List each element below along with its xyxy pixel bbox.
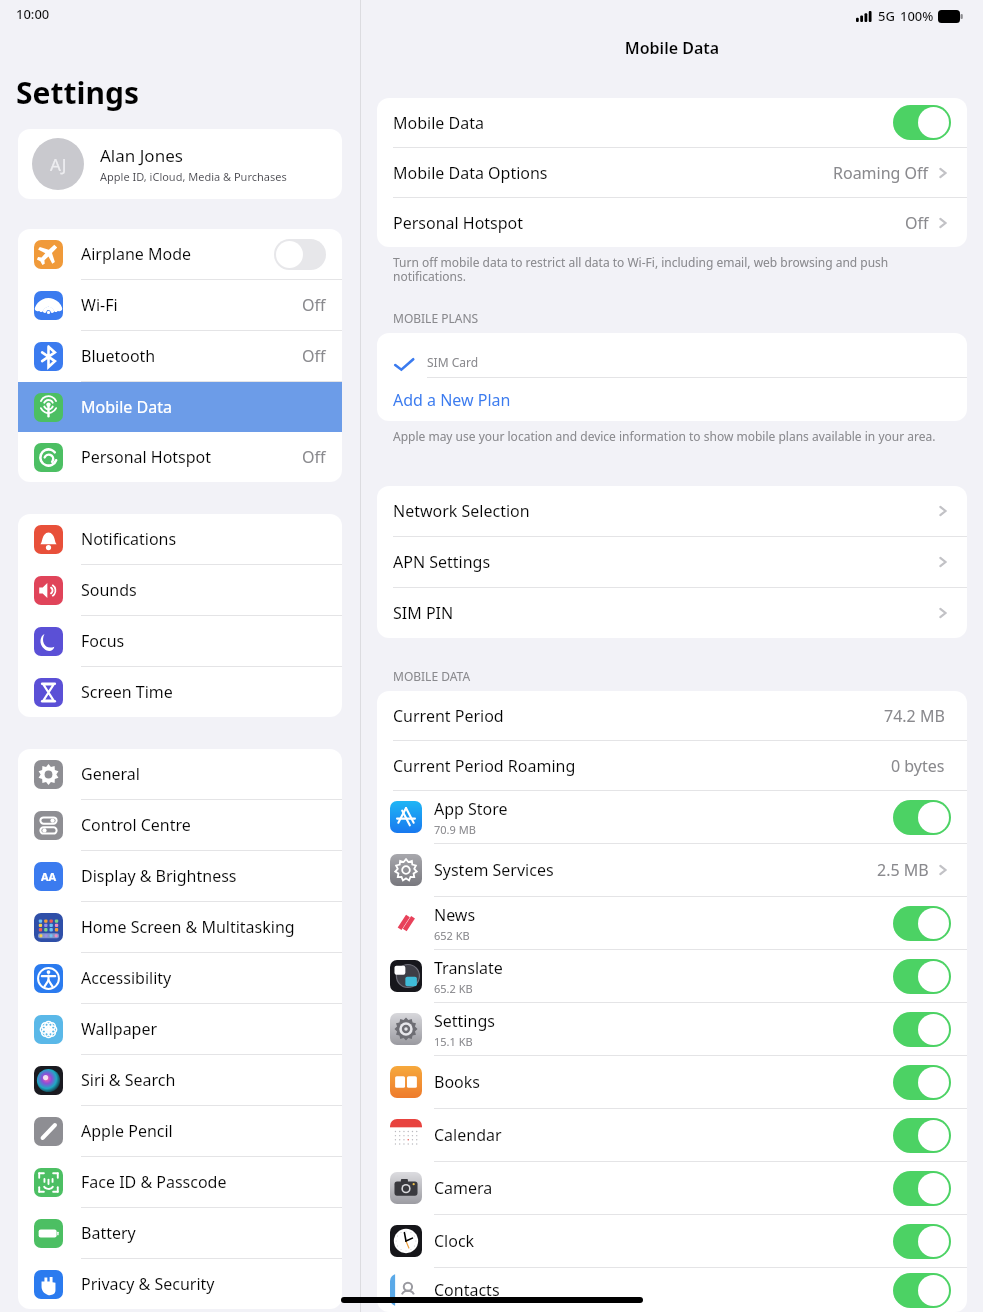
staticText: MOBILE PLANS [393, 310, 479, 326]
button[interactable]: Calendar [377, 1109, 967, 1161]
button[interactable]: Toggle [893, 1273, 951, 1308]
staticText: Add a New Plan [393, 389, 511, 411]
staticText: 0 bytes [891, 755, 945, 777]
staticText: 65.2 KB [434, 981, 473, 996]
button[interactable]: Screen Time [18, 667, 342, 717]
staticText: Settings [16, 72, 139, 113]
staticText: Off [905, 212, 929, 234]
button[interactable]: AA [18, 851, 342, 901]
button[interactable]: Mobile Data Options [377, 148, 967, 197]
button[interactable]: Focus [18, 616, 342, 666]
button[interactable]: AJ [18, 129, 342, 199]
button[interactable]: Toggle [893, 959, 951, 994]
staticText: Contacts [434, 1279, 500, 1301]
button[interactable]: Apple Pencil [18, 1106, 342, 1156]
button[interactable]: Network Selection [377, 486, 967, 536]
button[interactable]: Airplane Mode toggle [274, 239, 326, 270]
staticText: Personal Hotspot [393, 212, 905, 234]
button[interactable]: Airplane Mode [18, 229, 342, 279]
button[interactable]: Add a New Plan [377, 378, 967, 421]
button[interactable]: App Store [377, 791, 967, 843]
staticText: 70.9 MB [434, 822, 476, 837]
staticText: Off [302, 294, 326, 316]
button[interactable]: Current Period Roaming [377, 741, 967, 790]
staticText: AA [41, 869, 57, 884]
button[interactable]: Privacy & Security [18, 1259, 342, 1309]
staticText: Battery [81, 1222, 326, 1244]
button[interactable]: News [377, 897, 967, 949]
staticText: Home Screen & Multitasking [81, 916, 326, 938]
button[interactable]: Siri & Search [18, 1055, 342, 1105]
button[interactable]: Toggle [893, 906, 951, 941]
staticText: System Services [434, 859, 554, 881]
staticText: Wi-Fi [81, 294, 302, 316]
staticText: Current Period Roaming [393, 755, 891, 777]
staticText: General [81, 763, 326, 785]
button[interactable]: SIM PIN [377, 588, 967, 638]
button[interactable]: Wi-Fi [18, 280, 342, 330]
staticText: Off [302, 345, 326, 367]
staticText: Sounds [81, 579, 326, 601]
staticText: Clock [434, 1230, 475, 1252]
button[interactable]: Clock [377, 1215, 967, 1267]
staticText: Focus [81, 630, 326, 652]
staticText: App Store [434, 798, 508, 820]
staticText: Turn off mobile data to restrict all dat… [393, 254, 937, 285]
button[interactable]: Toggle [893, 800, 951, 835]
staticText: MOBILE DATA [393, 668, 471, 684]
button[interactable]: Battery [18, 1208, 342, 1258]
staticText: Settings [434, 1010, 495, 1032]
button[interactable]: Toggle [893, 105, 951, 140]
button[interactable]: Wallpaper [18, 1004, 342, 1054]
button[interactable]: Personal Hotspot [377, 198, 967, 247]
staticText: Network Selection [393, 500, 935, 522]
staticText: Off [302, 446, 326, 468]
staticText: Calendar [434, 1124, 502, 1146]
staticText: SIM Card [427, 354, 479, 370]
button[interactable]: Mobile Data [377, 98, 967, 147]
staticText: Translate [434, 957, 503, 979]
staticText: News [434, 904, 476, 926]
staticText: 652 KB [434, 928, 470, 943]
button[interactable]: Toggle [893, 1065, 951, 1100]
button[interactable]: Translate [377, 950, 967, 1002]
button[interactable]: Personal Hotspot [18, 432, 342, 482]
staticText: Accessibility [81, 967, 326, 989]
button[interactable]: Contacts [377, 1268, 967, 1312]
button[interactable]: Notifications [18, 514, 342, 564]
button[interactable]: Toggle [893, 1118, 951, 1153]
button[interactable]: APN Settings [377, 537, 967, 587]
staticText: 10:00 [16, 5, 50, 23]
staticText: Books [434, 1071, 480, 1093]
button[interactable]: SIM Card [377, 333, 967, 378]
button[interactable]: Face ID & Passcode [18, 1157, 342, 1207]
staticText: Roaming Off [833, 162, 929, 184]
button[interactable]: Toggle [893, 1012, 951, 1047]
staticText: Camera [434, 1177, 493, 1199]
button[interactable]: Bluetooth [18, 331, 342, 381]
staticText: Screen Time [81, 681, 326, 703]
button[interactable]: Mobile Data [18, 382, 342, 432]
button[interactable]: Current Period [377, 691, 967, 740]
button[interactable]: Control Centre [18, 800, 342, 850]
button[interactable]: System Services [377, 844, 967, 896]
staticText: 74.2 MB [884, 705, 945, 727]
staticText: Mobile Data [361, 37, 983, 59]
staticText: 2.5 MB [877, 859, 929, 881]
button[interactable]: Camera [377, 1162, 967, 1214]
staticText: Apple ID, iCloud, Media & Purchases [100, 169, 287, 184]
button[interactable]: Settings [377, 1003, 967, 1055]
staticText: Alan Jones [100, 144, 183, 167]
button[interactable]: Home Screen & Multitasking [18, 902, 342, 952]
staticText: APN Settings [393, 551, 935, 573]
staticText: AJ [50, 153, 67, 176]
button[interactable]: Books [377, 1056, 967, 1108]
button[interactable]: Toggle [893, 1224, 951, 1259]
staticText: Display & Brightness [81, 865, 326, 887]
staticText: Mobile Data [393, 112, 893, 134]
staticText: Bluetooth [81, 345, 302, 367]
button[interactable]: General [18, 749, 342, 799]
button[interactable]: Accessibility [18, 953, 342, 1003]
button[interactable]: Sounds [18, 565, 342, 615]
button[interactable]: Toggle [893, 1171, 951, 1206]
